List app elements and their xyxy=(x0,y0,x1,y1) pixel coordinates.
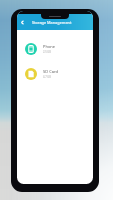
staticText: Phone xyxy=(43,44,56,49)
staticText: 2.5 GB xyxy=(43,50,51,54)
staticText: 4.7 GB xyxy=(43,75,51,79)
staticText: SD Card xyxy=(43,69,58,74)
button[interactable]: Back xyxy=(18,18,27,27)
button[interactable]: SD Card xyxy=(17,68,93,80)
button[interactable]: Phone xyxy=(17,43,93,55)
staticText: Storage Management xyxy=(32,20,72,25)
